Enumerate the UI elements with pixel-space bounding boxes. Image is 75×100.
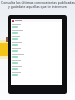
button[interactable]: [11, 35, 62, 41]
button[interactable]: Logo: [12, 19, 62, 22]
button[interactable]: [11, 53, 62, 59]
button[interactable]: [11, 29, 62, 35]
staticText: Consulta las últimas convocatorias publi…: [1, 0, 75, 4]
staticText: y guárdate aquellas que te interesen: [8, 4, 67, 8]
button[interactable]: [11, 23, 62, 29]
other: Logo: [12, 20, 14, 22]
button[interactable]: [11, 47, 62, 53]
button[interactable]: [11, 59, 62, 65]
button[interactable]: [11, 71, 62, 77]
button[interactable]: [11, 65, 62, 71]
button[interactable]: [11, 41, 62, 47]
